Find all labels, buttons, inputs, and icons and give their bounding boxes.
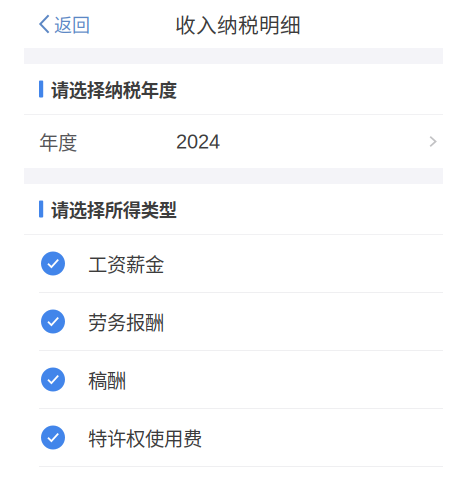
staticText: 稿酬 <box>88 365 126 393</box>
button[interactable]: 特许权使用费 <box>24 409 443 467</box>
staticText: 特许权使用费 <box>88 423 202 451</box>
staticText: 年度 <box>39 127 77 155</box>
staticText: 请选择纳税年度 <box>51 76 177 102</box>
staticText: 收入纳税明细 <box>175 9 301 39</box>
staticText: 返回 <box>54 11 90 37</box>
staticText: 请选择所得类型 <box>51 196 177 222</box>
button[interactable]: 工资薪金 <box>24 235 443 293</box>
button[interactable]: 稿酬 <box>24 351 443 409</box>
button[interactable]: 劳务报酬 <box>24 293 443 351</box>
staticText: 劳务报酬 <box>88 307 164 335</box>
staticText: 工资薪金 <box>88 249 164 277</box>
staticText: 2024 <box>176 130 220 153</box>
button[interactable]: 返回 <box>24 3 100 45</box>
button[interactable]: 年度 <box>24 115 443 168</box>
